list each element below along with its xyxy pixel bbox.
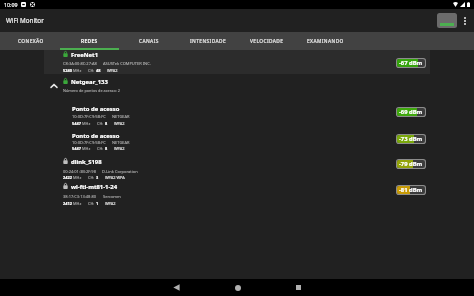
staticText: CH: bbox=[88, 201, 95, 206]
staticText: -81 dBm bbox=[399, 186, 423, 194]
button[interactable]: Scan toggle bbox=[437, 13, 457, 28]
staticText: EXAMINANDO bbox=[307, 38, 344, 45]
staticText: 2422 bbox=[63, 175, 72, 180]
staticText: C8:3A:00:8C:27:A8 bbox=[63, 61, 97, 66]
staticText: NETGEAR bbox=[112, 114, 130, 119]
staticText: CH: bbox=[97, 146, 104, 151]
staticText: 10:0D:7F:C9:5B:FC bbox=[72, 114, 106, 119]
staticText: -69 dBm bbox=[399, 108, 423, 116]
staticText: ASUSTek COMPUTER INC. bbox=[103, 61, 151, 66]
staticText: CONEXÃO bbox=[18, 38, 44, 45]
staticText: VELOCIDADE bbox=[250, 38, 284, 45]
button[interactable]: VELOCIDADE bbox=[237, 32, 296, 50]
staticText: WPA2 bbox=[114, 121, 125, 126]
staticText: WPA2 bbox=[105, 201, 116, 206]
staticText: CANAIS bbox=[139, 38, 159, 45]
staticText: MHz bbox=[73, 201, 82, 206]
button[interactable] bbox=[44, 128, 430, 155]
button[interactable] bbox=[44, 181, 430, 207]
staticText: -73 dBm bbox=[399, 135, 423, 143]
button[interactable]: Back bbox=[146, 279, 207, 296]
staticText: 8 bbox=[105, 121, 108, 126]
staticText: dlink_S198 bbox=[71, 158, 102, 166]
button[interactable]: CANAIS bbox=[119, 32, 178, 50]
staticText: NETGEAR bbox=[112, 140, 130, 145]
staticText: Netgear_133 bbox=[71, 78, 108, 86]
button[interactable]: -81 dBm bbox=[396, 185, 426, 195]
staticText: 5240 bbox=[63, 68, 72, 73]
button[interactable]: -73 dBm bbox=[396, 134, 426, 144]
staticText: Ponto de acesso bbox=[72, 105, 120, 113]
staticText: MHz bbox=[73, 68, 82, 73]
staticText: REDES bbox=[81, 38, 98, 45]
button[interactable]: Recents bbox=[268, 279, 329, 296]
staticText: 8 bbox=[105, 146, 108, 151]
button[interactable]: More options bbox=[460, 9, 469, 32]
button[interactable]: -67 dBm bbox=[396, 58, 426, 68]
button[interactable]: EXAMINANDO bbox=[296, 32, 355, 50]
staticText: MHz bbox=[73, 175, 82, 180]
staticText: 48 bbox=[96, 68, 101, 73]
staticText: 3 bbox=[96, 175, 99, 180]
staticText: WPA2 bbox=[107, 68, 118, 73]
button[interactable] bbox=[44, 101, 430, 128]
staticText: -67 dBm bbox=[399, 59, 423, 67]
button[interactable] bbox=[44, 75, 430, 101]
staticText: 00:24:01:3B:2F:98 bbox=[63, 169, 96, 174]
staticText: Ponto de acesso bbox=[72, 132, 120, 140]
staticText: CH: bbox=[88, 68, 95, 73]
button[interactable]: -79 dBm bbox=[396, 159, 426, 169]
staticText: CH: bbox=[97, 121, 104, 126]
button[interactable]: -69 dBm bbox=[396, 107, 426, 117]
staticText: D-Link Corporation bbox=[102, 169, 138, 174]
staticText: 5447 bbox=[72, 121, 81, 126]
staticText: Sercomm bbox=[103, 194, 121, 199]
staticText: 2412 bbox=[63, 201, 72, 206]
button[interactable] bbox=[44, 155, 430, 181]
staticText: WPA2 WPA bbox=[105, 175, 125, 180]
staticText: 10:09 bbox=[4, 1, 18, 8]
staticText: 1 bbox=[96, 201, 99, 206]
staticText: WPA2 bbox=[114, 146, 125, 151]
button[interactable]: CONEXÃO bbox=[1, 32, 60, 50]
staticText: MHz bbox=[82, 146, 91, 151]
staticText: INTENSIDADE bbox=[190, 38, 226, 45]
staticText: 5447 bbox=[72, 146, 81, 151]
button[interactable]: Home bbox=[207, 279, 268, 296]
staticText: MHz bbox=[82, 121, 91, 126]
staticText: wl-ftl-mt81-1-24 bbox=[71, 183, 118, 191]
button[interactable]: REDES bbox=[60, 32, 119, 50]
staticText: -79 dBm bbox=[399, 160, 423, 168]
button[interactable]: INTENSIDADE bbox=[178, 32, 237, 50]
staticText: 10:0D:7F:C9:5B:FC bbox=[72, 140, 106, 145]
staticText: Número de pontos de acesso: 2 bbox=[63, 88, 120, 93]
staticText: FreeNet1 bbox=[71, 51, 99, 59]
staticText: CH: bbox=[88, 175, 95, 180]
staticText: WiFi Monitor bbox=[6, 16, 44, 25]
staticText: 38:17:C3:13:48:80 bbox=[63, 194, 97, 199]
button[interactable] bbox=[44, 50, 430, 74]
